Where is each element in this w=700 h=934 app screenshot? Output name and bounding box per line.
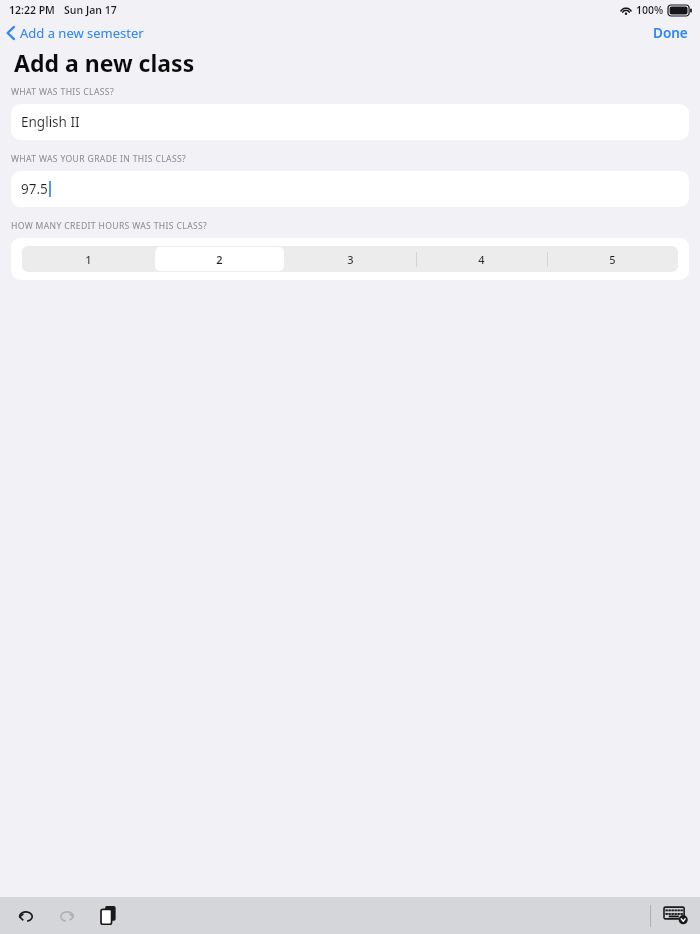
staticText: Done [653,24,688,42]
button[interactable]: 97.5 [11,171,689,207]
button[interactable]: 3 [285,246,416,272]
staticText: Add a new class [14,47,195,78]
button[interactable]: 4 [416,246,547,272]
staticText: HOW MANY CREDIT HOURS WAS THIS CLASS? [11,220,208,232]
staticText: Sun Jan 17 [64,3,117,17]
button[interactable]: English II [11,104,689,140]
button[interactable]: Add a new semester [0,21,152,45]
button[interactable]: 1 [22,246,154,272]
staticText: WHAT WAS THIS CLASS? [11,86,114,98]
staticText: 100% [636,3,664,17]
button[interactable]: Hide keyboard [660,901,692,930]
staticText: 1 [85,252,92,267]
staticText: 97.5 [21,180,48,198]
staticText: Add a new semester [20,24,144,42]
staticText: 4 [478,252,485,267]
staticText: 12:22 PM [9,3,55,17]
staticText: WHAT WAS YOUR GRADE IN THIS CLASS? [11,153,187,165]
button[interactable]: Undo [8,901,43,930]
staticText: 2 [216,252,223,267]
button[interactable]: 5 [547,246,678,272]
staticText: 3 [347,252,354,267]
button[interactable]: Redo [50,901,85,930]
button[interactable]: 2 [154,246,285,272]
staticText: English II [21,113,80,131]
staticText: 5 [609,252,616,267]
button[interactable]: Done [641,20,700,46]
button[interactable]: Paste [92,901,125,930]
